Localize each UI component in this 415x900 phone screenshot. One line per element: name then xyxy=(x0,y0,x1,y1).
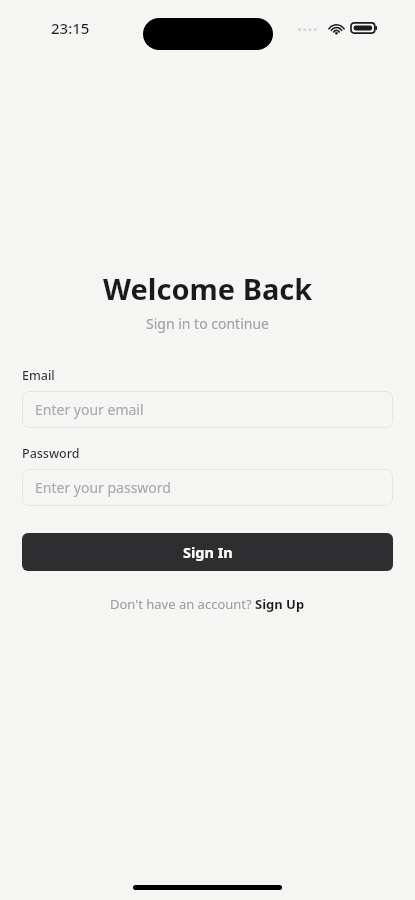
staticText: Sign In xyxy=(183,542,233,562)
other: Battery xyxy=(351,21,378,35)
staticText: 23:15 xyxy=(51,18,90,38)
other: Wi-Fi xyxy=(328,22,345,35)
staticText: Email xyxy=(22,367,55,384)
button[interactable]: Enter your password xyxy=(22,469,393,506)
staticText: Password xyxy=(22,445,80,462)
staticText: Welcome Back xyxy=(103,269,313,308)
staticText: Enter your email xyxy=(35,400,144,419)
staticText: Don't have an account? Sign Up xyxy=(110,595,305,613)
staticText: Sign in to continue xyxy=(146,314,269,333)
button[interactable]: Enter your email xyxy=(22,391,393,428)
staticText: Enter your password xyxy=(35,478,171,497)
other: Cellular signal xyxy=(297,21,323,35)
button[interactable]: Sign In xyxy=(22,533,393,571)
button[interactable]: Don't have an account? Sign Up xyxy=(100,591,315,617)
